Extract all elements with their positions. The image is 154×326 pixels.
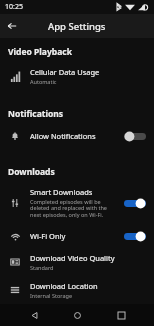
staticText: Smart Downloads: [30, 187, 93, 197]
staticText: Allow Notifications: [30, 131, 96, 141]
staticText: App Settings: [48, 20, 106, 33]
button[interactable]: Toggle off: [124, 131, 146, 142]
staticText: Download Location: [30, 281, 98, 291]
staticText: Downloads: [8, 166, 55, 178]
button[interactable]: Allow Notifications: [0, 124, 154, 148]
button[interactable]: Back: [3, 17, 21, 35]
button[interactable]: Cellular Data Usage: [0, 62, 154, 90]
staticText: 10:25: [5, 2, 23, 12]
button[interactable]: Smart Downloads: [0, 182, 154, 224]
staticText: Video Playback: [8, 46, 72, 58]
button[interactable]: Home: [67, 305, 87, 325]
staticText: Notifications: [8, 108, 64, 120]
staticText: Download Video Quality: [30, 253, 115, 263]
staticText: Wi-Fi Only: [30, 231, 66, 241]
button[interactable]: Recents: [111, 305, 131, 325]
staticText: Cellular Data Usage: [30, 67, 100, 77]
staticText: Standard: [30, 264, 54, 271]
button[interactable]: Wi-Fi Only: [0, 224, 154, 248]
button[interactable]: Download Video Quality: [0, 248, 154, 276]
staticText: Internal Storage: [30, 292, 73, 299]
button[interactable]: Download Location: [0, 276, 154, 304]
staticText: Completed episodes will be deleted and r…: [30, 198, 118, 219]
button[interactable]: Toggle on: [124, 231, 146, 242]
staticText: Automatic: [30, 78, 57, 85]
button[interactable]: Toggle on: [124, 198, 146, 209]
button[interactable]: Back: [24, 305, 44, 325]
